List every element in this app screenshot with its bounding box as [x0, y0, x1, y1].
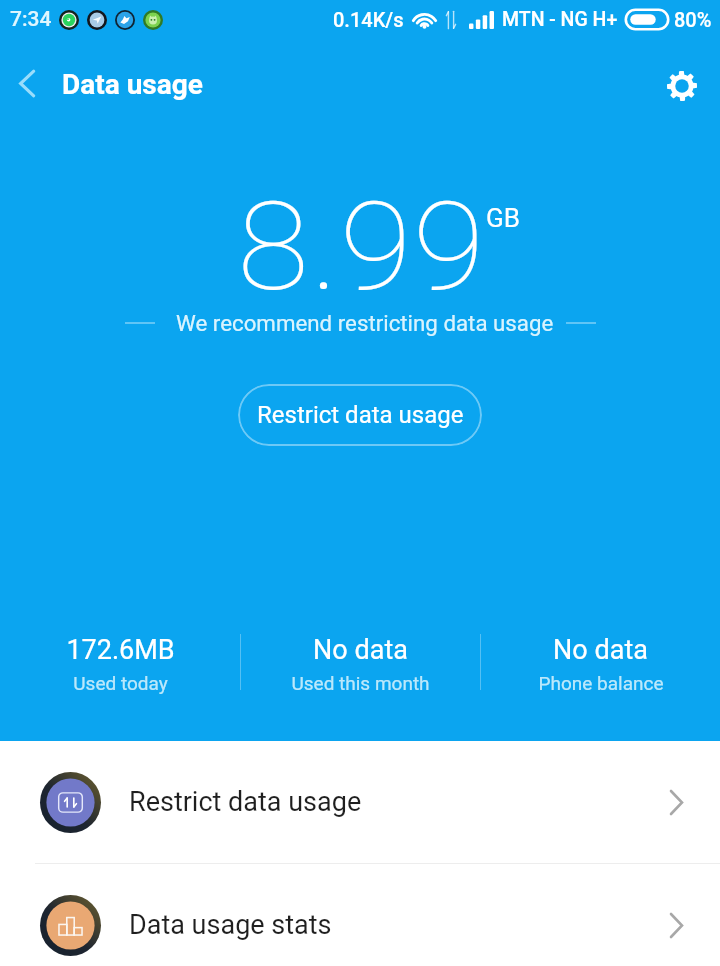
staticText: Data usage stats — [129, 909, 332, 941]
button[interactable]: Restrict data usage — [238, 384, 482, 446]
staticText: 172.6MB — [66, 634, 175, 666]
staticText: Restrict data usage — [257, 401, 464, 429]
button[interactable]: Back — [0, 44, 54, 122]
staticText: 0.14K/s — [333, 8, 404, 31]
staticText: MTN - NG H+ — [502, 8, 618, 31]
staticText: Used this month — [291, 672, 430, 694]
staticText: No data — [313, 634, 408, 666]
staticText: 7:34 — [10, 7, 52, 32]
button[interactable]: Data usage stats — [0, 864, 720, 966]
button[interactable]: Settings — [654, 58, 710, 114]
staticText: No data — [553, 634, 648, 666]
staticText: Restrict data usage — [129, 786, 362, 818]
staticText: Phone balance — [538, 672, 664, 694]
staticText: 80% — [674, 8, 712, 31]
button[interactable]: Restrict data usage — [0, 741, 720, 863]
staticText: 8.99 — [237, 176, 487, 319]
staticText: We recommend restricting data usage — [176, 310, 554, 336]
staticText: GB — [486, 203, 520, 233]
staticText: Used today — [73, 672, 168, 694]
staticText: Data usage — [62, 68, 203, 101]
